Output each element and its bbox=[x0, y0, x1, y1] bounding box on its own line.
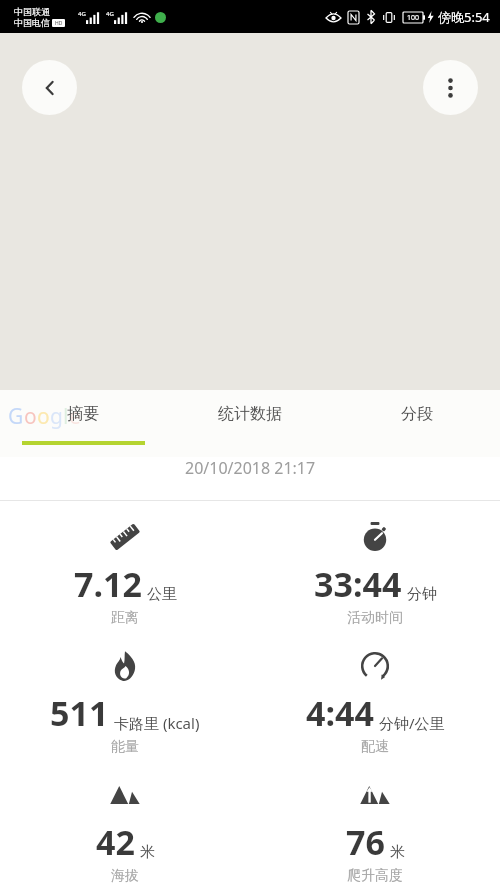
staticText: 20/10/2018 21:17 bbox=[185, 457, 316, 479]
staticText: 公里 bbox=[147, 585, 177, 604]
button[interactable]: 摘要 bbox=[0, 390, 166, 457]
staticText: 统计数据 bbox=[218, 404, 282, 424]
staticText: e bbox=[69, 402, 81, 431]
staticText: 33:44 bbox=[314, 561, 402, 607]
staticText: 卡路里 (kcal) bbox=[114, 713, 200, 733]
staticText: HD bbox=[55, 20, 63, 27]
staticText: 42 bbox=[96, 819, 135, 865]
staticText: 中国电信 bbox=[14, 17, 50, 28]
staticText: 能量 bbox=[111, 738, 139, 756]
staticText: 分钟/公里 bbox=[379, 713, 445, 733]
staticText: 100 bbox=[407, 13, 420, 23]
button[interactable]: 76 bbox=[250, 775, 500, 885]
staticText: 活动时间 bbox=[347, 609, 403, 627]
button[interactable]: 33:44 bbox=[250, 517, 500, 627]
staticText: 摘要 bbox=[67, 404, 99, 424]
staticText: l bbox=[63, 402, 69, 431]
button[interactable]: 4:44 bbox=[250, 646, 500, 756]
staticText: 配速 bbox=[361, 738, 389, 756]
staticText: 中国联通 bbox=[14, 6, 50, 17]
staticText: o bbox=[37, 402, 50, 431]
button[interactable]: 511 bbox=[0, 646, 250, 756]
staticText: G bbox=[8, 402, 24, 431]
button[interactable]: 7.12 bbox=[0, 517, 250, 627]
button[interactable]: 分段 bbox=[333, 390, 500, 457]
staticText: 分钟 bbox=[407, 585, 437, 604]
button[interactable]: More options bbox=[423, 60, 478, 115]
button[interactable]: 统计数据 bbox=[166, 390, 333, 457]
button[interactable]: Back bbox=[22, 60, 77, 115]
staticText: 米 bbox=[140, 843, 155, 862]
staticText: 7.12 bbox=[74, 561, 142, 607]
staticText: 距离 bbox=[111, 609, 139, 627]
staticText: 爬升高度 bbox=[347, 867, 403, 885]
staticText: 511 bbox=[50, 690, 109, 736]
staticText: 米 bbox=[390, 843, 405, 862]
staticText: 傍晚5:54 bbox=[438, 8, 490, 26]
staticText: 4:44 bbox=[306, 690, 374, 736]
staticText: 分段 bbox=[401, 404, 433, 424]
staticText: 海拔 bbox=[111, 867, 139, 885]
staticText: 4G bbox=[106, 10, 114, 18]
staticText: o bbox=[24, 402, 37, 431]
staticText: g bbox=[50, 402, 63, 431]
staticText: 76 bbox=[346, 819, 385, 865]
button[interactable]: 42 bbox=[0, 775, 250, 885]
staticText: 4G bbox=[78, 10, 86, 18]
